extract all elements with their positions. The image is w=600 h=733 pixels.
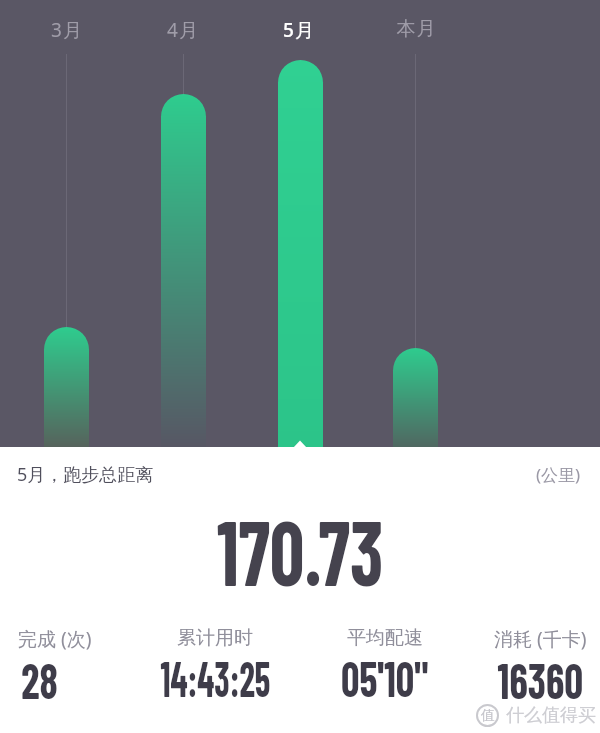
button[interactable] (161, 94, 206, 447)
button[interactable]: 完成 (次) (18, 626, 92, 714)
staticText: 值 (481, 707, 495, 725)
button[interactable] (278, 60, 323, 447)
staticText: 消耗 (千卡) (494, 626, 587, 652)
button[interactable]: 累计用时 (130, 626, 300, 712)
staticText: 16360 (498, 650, 583, 709)
staticText: 累计用时 (177, 626, 253, 650)
staticText: 170.73 (217, 494, 384, 604)
button[interactable]: 消耗 (千卡) (455, 626, 600, 714)
button[interactable]: 3月 (17, 17, 117, 43)
staticText: 5月 (283, 17, 315, 43)
staticText: 5月，跑步总距离 (17, 462, 154, 487)
button[interactable] (44, 327, 89, 447)
staticText: (公里) (536, 463, 581, 486)
staticText: 4月 (167, 17, 199, 43)
button[interactable] (393, 348, 438, 447)
staticText: 什么值得买 (506, 704, 596, 727)
staticText: 14:43:25 (160, 648, 271, 707)
button[interactable]: 5月，跑步总距离 (17, 462, 581, 487)
staticText: 完成 (次) (18, 626, 92, 652)
staticText: 05'10" (341, 648, 429, 707)
staticText: 本月 (396, 17, 436, 41)
staticText: 平均配速 (347, 626, 423, 650)
button[interactable]: 5月 (249, 17, 349, 43)
button[interactable]: 本月 (366, 17, 466, 41)
button[interactable]: 值 (476, 704, 596, 727)
button[interactable]: 4月 (133, 17, 233, 43)
button[interactable]: 平均配速 (300, 626, 470, 712)
staticText: 28 (21, 650, 59, 709)
staticText: 3月 (51, 17, 83, 43)
